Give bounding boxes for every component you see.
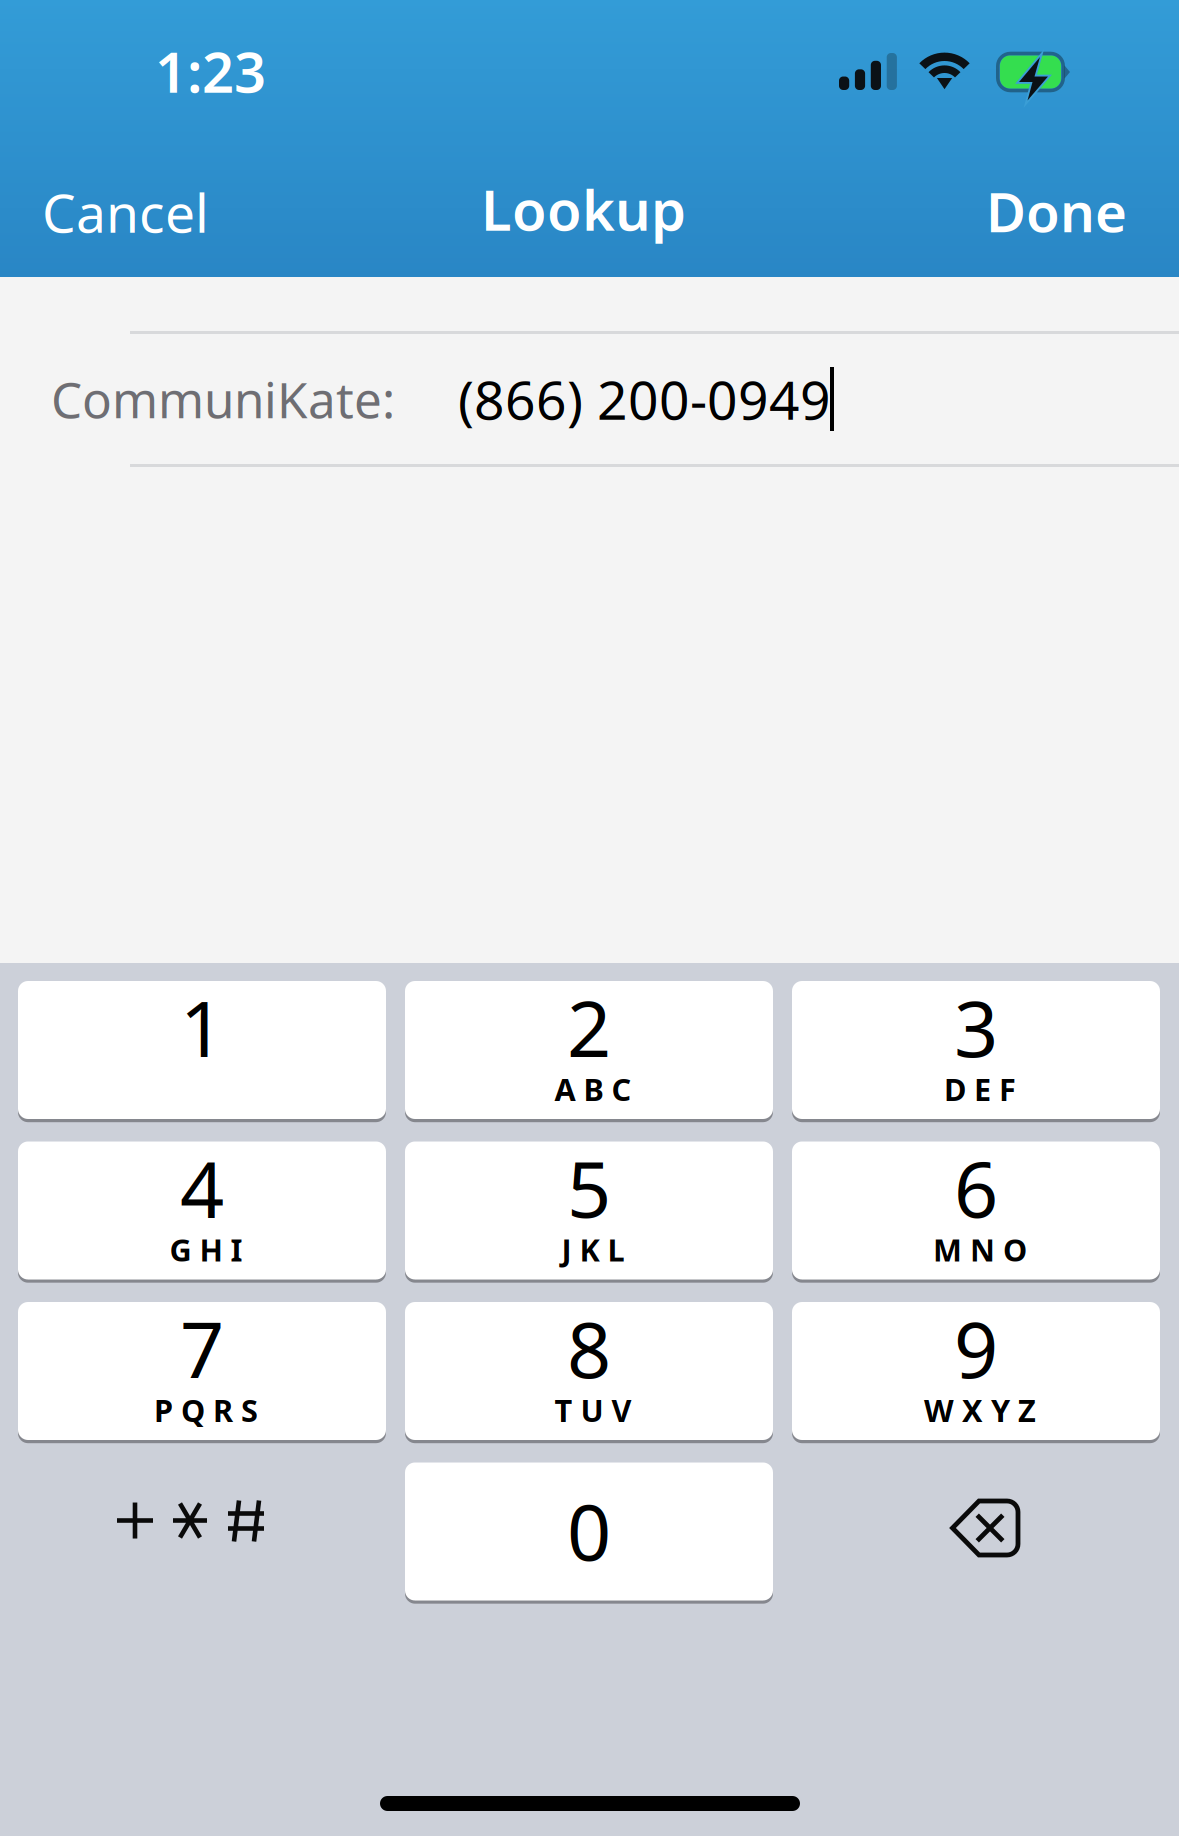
button[interactable]: Delete [792,1462,1160,1600]
staticText: 1 [180,976,224,1078]
staticText: J K L [561,1229,624,1270]
staticText: 4 [180,1136,224,1239]
staticText: G H I [169,1229,242,1270]
button[interactable]: 9 [792,1302,1160,1444]
button[interactable]: 0 [405,1462,773,1604]
staticText: 3 [954,976,998,1078]
button[interactable]: 2 [405,981,773,1123]
staticText: A B C [554,1069,631,1109]
staticText: 8 [567,1297,611,1399]
button[interactable]: 7 [18,1302,386,1444]
staticText: (866) 200-0949 [458,364,831,434]
button[interactable]: 3 [792,981,1160,1123]
staticText: Done [986,175,1127,247]
staticText: T U V [554,1390,631,1430]
button[interactable]: CommuniKate: [0,331,1179,469]
staticText: W X Y Z [924,1390,1036,1430]
staticText: M N O [933,1229,1027,1270]
button[interactable]: 5 [405,1141,773,1283]
button[interactable]: Cancel [0,160,238,264]
button[interactable]: 8 [405,1302,773,1444]
staticText: CommuniKate: [51,366,395,432]
staticText: 7 [180,1297,224,1399]
staticText: 2 [567,976,611,1078]
button[interactable]: Symbols [18,1462,386,1600]
staticText: Lookup [481,172,686,246]
button[interactable]: Done [883,159,1127,263]
staticText: D E F [944,1069,1016,1109]
staticText: 6 [954,1136,998,1239]
button[interactable]: 4 [18,1141,386,1283]
staticText: 5 [567,1136,611,1239]
staticText: 1:23 [155,34,266,108]
button[interactable]: 6 [792,1141,1160,1283]
staticText: 9 [954,1297,998,1399]
button[interactable]: 1 [18,981,386,1123]
staticText: 0 [567,1479,611,1582]
staticText: Cancel [42,177,209,247]
staticText: P Q R S [154,1390,258,1430]
